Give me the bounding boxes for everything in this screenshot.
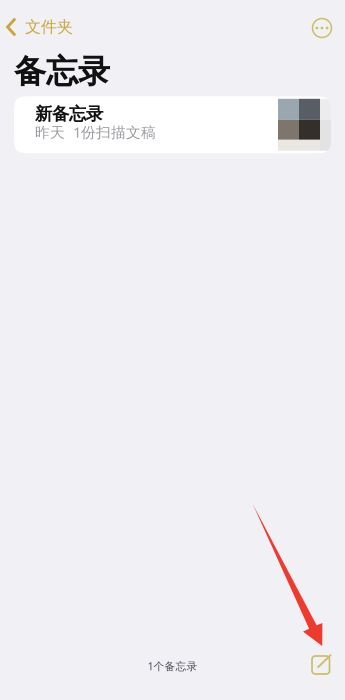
staticText: 1个备忘录 (147, 659, 197, 673)
button[interactable]: 新备忘录 (14, 96, 331, 153)
button[interactable]: 更多 (312, 12, 345, 42)
staticText: 昨天 1份扫描文稿 (35, 122, 156, 142)
button[interactable]: 新建备忘录 (302, 645, 345, 685)
staticText: 新备忘录 (35, 103, 103, 125)
button[interactable]: 文件夹 (0, 12, 73, 42)
staticText: 文件夹 (25, 17, 73, 37)
staticText: 备忘录 (14, 52, 110, 91)
